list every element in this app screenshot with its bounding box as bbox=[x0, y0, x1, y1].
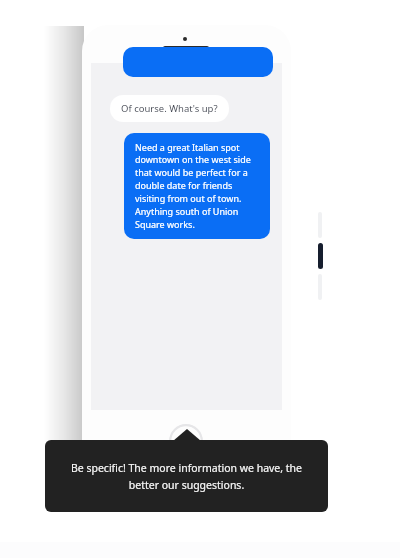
staticText: Of course. What's up? bbox=[121, 102, 218, 115]
button[interactable]: Step 2, current bbox=[318, 243, 323, 269]
staticText: Be specific! The more information we hav… bbox=[65, 461, 308, 492]
button[interactable]: Of course. What's up? bbox=[110, 95, 229, 122]
button[interactable]: Need a great Italian spot downtown on th… bbox=[124, 133, 270, 239]
staticText: Need a great Italian spot downtown on th… bbox=[135, 141, 259, 231]
button[interactable]: Home bbox=[169, 424, 203, 458]
button[interactable] bbox=[123, 47, 273, 77]
button[interactable]: Be specific! The more information we hav… bbox=[45, 440, 328, 512]
